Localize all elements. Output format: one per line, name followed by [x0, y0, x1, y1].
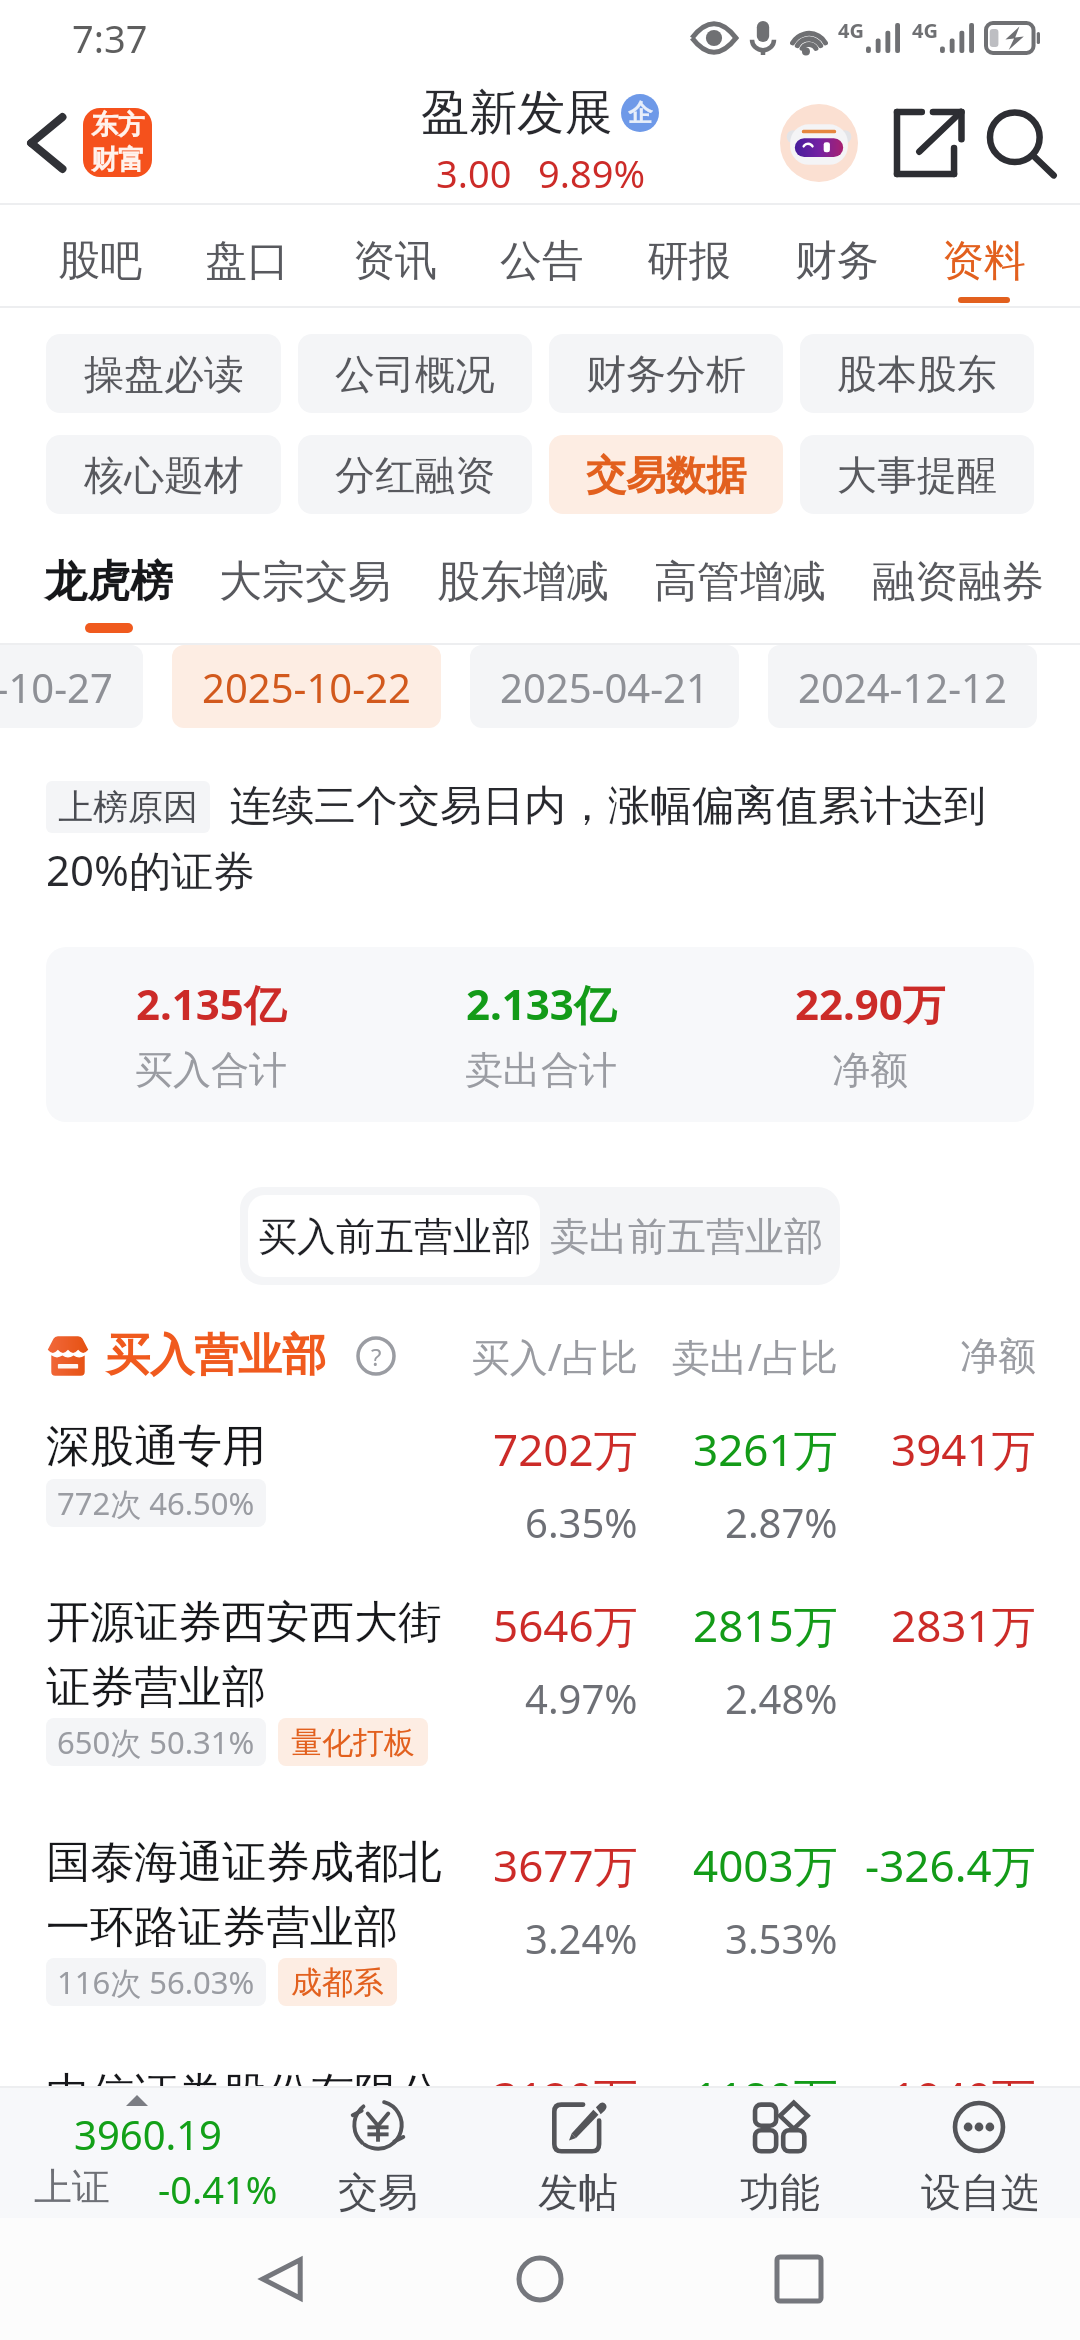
staticText: 2024-12-12 [798, 660, 1007, 714]
staticText: 量化打板 [291, 1723, 415, 1762]
staticText: 司北京望京证券营业部 [46, 2132, 486, 2187]
staticText: 上证 [34, 2163, 110, 2211]
staticText: 3.00 [436, 147, 512, 199]
staticText: 融资融券 [872, 555, 1044, 609]
button[interactable]: 龙虎榜 [44, 514, 173, 633]
button[interactable]: 功能 [722, 2095, 838, 2217]
staticText: 206次 48.12% [57, 2193, 255, 2235]
staticText: 功能 [740, 2167, 820, 2217]
staticText: 4G [838, 17, 864, 44]
button[interactable]: 财务分析 [549, 334, 783, 413]
button[interactable]: 交易数据 [549, 435, 783, 514]
button[interactable]: Recents [768, 2248, 830, 2310]
staticText: 2.75% [525, 2143, 638, 2197]
staticText: 股东增减 [437, 555, 609, 609]
button[interactable]: 设自选 [921, 2095, 1037, 2217]
button[interactable]: 操盘必读 [46, 334, 281, 413]
button[interactable]: 开源证券西安西大街 [0, 1559, 1080, 1799]
staticText: 高管增减 [654, 555, 826, 609]
button[interactable]: 交易 [320, 2095, 436, 2217]
button[interactable]: 股东增减 [437, 514, 609, 633]
staticText: 3261万 [693, 1419, 838, 1479]
staticText: 国泰海通证券成都北 [46, 1835, 442, 1890]
button[interactable]: 深股通专用 [0, 1383, 1080, 1559]
button[interactable]: 核心题材 [46, 435, 281, 514]
staticText: 公告 [500, 235, 584, 288]
staticText: 证券营业部 [46, 1660, 266, 1715]
staticText: 22.90万 [795, 975, 945, 1032]
staticText: 净额 [838, 1332, 1036, 1380]
button[interactable]: 研报 [647, 205, 731, 303]
staticText: 财富 [91, 143, 145, 177]
button[interactable]: 高管增减 [654, 514, 826, 633]
button[interactable]: 2025-10-27 [0, 645, 143, 728]
staticText: 1180万 [693, 2067, 838, 2127]
button[interactable]: 资讯 [353, 205, 437, 303]
button[interactable]: 2024-12-12 [768, 645, 1037, 728]
button[interactable]: 大宗交易 [219, 514, 391, 633]
staticText: 分红融资 [335, 450, 495, 500]
button[interactable]: 卖出前五营业部 [540, 1195, 832, 1277]
staticText: 5646万 [493, 1595, 638, 1655]
staticText: 核心题材 [84, 450, 244, 500]
staticText: 4003万 [693, 1835, 838, 1895]
staticText: 1940万 [891, 2067, 1036, 2127]
staticText: 1.04% [725, 2143, 838, 2197]
staticText: 2025-10-22 [202, 660, 411, 714]
staticText: 发帖 [538, 2167, 618, 2217]
staticText: 卖出前五营业部 [550, 1212, 823, 1261]
staticText: 股吧 [58, 235, 142, 288]
staticText: 成都系 [291, 1963, 384, 2002]
button[interactable]: Home [509, 2248, 571, 2310]
staticText: 开源证券西安西大街 [46, 1595, 442, 1650]
button[interactable]: AI assistant [780, 104, 858, 182]
button[interactable]: 融资融券 [872, 514, 1044, 633]
button[interactable]: 公司概况 [298, 334, 532, 413]
staticText: 2.48% [725, 1671, 838, 1725]
staticText: 净额 [832, 1046, 908, 1094]
staticText: 2815万 [693, 1595, 838, 1655]
button[interactable]: Back [8, 108, 78, 178]
staticText: 7:37 [72, 12, 148, 64]
staticText: ? [371, 1340, 382, 1373]
button[interactable]: 买入前五营业部 [248, 1195, 540, 1277]
button[interactable]: 中信证券股份有限公 [0, 2031, 1080, 2271]
staticText: 中信证券股份有限公 [46, 2067, 442, 2122]
staticText: 20%的证券 [46, 841, 255, 898]
staticText: 交易 [338, 2167, 418, 2217]
button[interactable]: 财务 [795, 205, 879, 303]
button[interactable]: 发帖 [520, 2095, 636, 2217]
staticText: 操盘必读 [84, 349, 244, 399]
button[interactable]: 大事提醒 [800, 435, 1034, 514]
button[interactable]: 2025-04-21 [470, 645, 739, 728]
staticText: 9.89% [538, 147, 645, 199]
staticText: 2025-10-27 [0, 660, 113, 714]
button[interactable]: 资料 [942, 205, 1026, 303]
button[interactable]: 分红融资 [298, 435, 532, 514]
staticText: 上榜原因 [58, 785, 198, 829]
staticText: 公司概况 [335, 349, 495, 399]
button[interactable]: 2025-10-22 [172, 645, 441, 728]
button[interactable]: 盘口 [205, 205, 289, 303]
button[interactable]: 股吧 [58, 205, 142, 303]
button[interactable]: 股本股东 [800, 334, 1034, 413]
button[interactable]: Back [250, 2248, 312, 2310]
staticText: 买入/占比 [438, 1330, 638, 1382]
staticText: 3120万 [493, 2067, 638, 2127]
button[interactable]: Share [894, 109, 962, 177]
button[interactable]: 国泰海通证券成都北 [0, 1799, 1080, 2031]
staticText: 龙虎榜 [44, 555, 173, 609]
staticText: 买入营业部 [106, 1328, 326, 1383]
staticText: 7202万 [493, 1419, 638, 1479]
staticText: 东方 [91, 108, 145, 142]
button[interactable]: Help [356, 1336, 396, 1376]
staticText: 盘口 [205, 235, 289, 288]
button[interactable]: 公告 [500, 205, 584, 303]
staticText: 交易数据 [586, 450, 746, 500]
button[interactable]: 东方 [83, 108, 152, 177]
staticText: 3.24% [525, 1911, 638, 1965]
button[interactable]: 3960.19 [0, 2107, 286, 2215]
button[interactable]: Search [986, 107, 1058, 179]
staticText: 资料 [942, 235, 1026, 288]
staticText: 772次 46.50% [57, 1482, 255, 1524]
